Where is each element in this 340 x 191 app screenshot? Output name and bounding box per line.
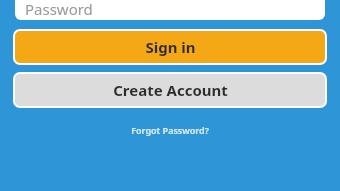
staticText: Password bbox=[25, 0, 93, 19]
button[interactable]: Password bbox=[15, 0, 325, 20]
button[interactable]: Create Account bbox=[15, 74, 325, 106]
staticText: Sign in bbox=[145, 37, 196, 57]
staticText: Create Account bbox=[113, 80, 228, 100]
staticText: Forgot Password? bbox=[131, 124, 209, 136]
button[interactable]: Sign in bbox=[15, 31, 325, 63]
button[interactable]: Forgot Password? bbox=[0, 119, 340, 141]
